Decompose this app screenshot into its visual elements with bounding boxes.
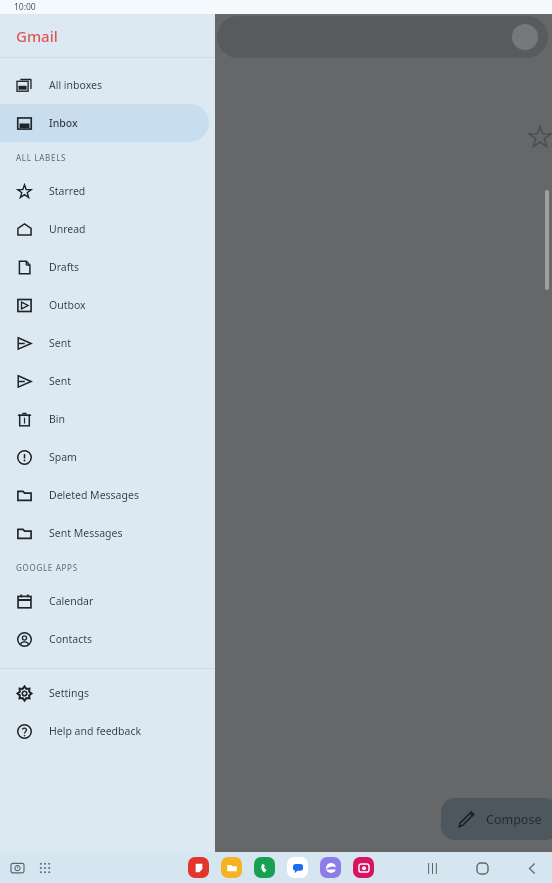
button[interactable]: Settings	[0, 674, 209, 712]
button[interactable]: Help and feedback	[0, 712, 209, 750]
staticText: Drafts	[49, 260, 80, 274]
staticText: Contacts	[49, 632, 93, 646]
button[interactable]: App	[353, 857, 374, 878]
staticText: Bin	[49, 412, 66, 426]
button[interactable]: Sent	[0, 324, 209, 362]
staticText: Sent	[49, 374, 71, 388]
button[interactable]: App	[320, 857, 341, 878]
staticText: Gmail	[16, 26, 58, 46]
button[interactable]: Account	[217, 16, 548, 58]
button[interactable]: All inboxes	[0, 66, 209, 104]
button[interactable]: Compose	[441, 798, 552, 840]
button[interactable]: Drafts	[0, 248, 209, 286]
staticText: Calendar	[49, 594, 94, 608]
button[interactable]: Inbox	[0, 104, 209, 142]
staticText: Inbox	[49, 116, 78, 130]
button[interactable]: App	[287, 857, 308, 878]
staticText: Settings	[49, 686, 89, 700]
staticText: All inboxes	[49, 78, 102, 92]
staticText: GOOGLE APPS	[16, 562, 78, 573]
staticText: Sent	[49, 336, 71, 350]
button[interactable]: Unread	[0, 210, 209, 248]
button[interactable]: Spam	[0, 438, 209, 476]
button[interactable]: Outbox	[0, 286, 209, 324]
staticText: 10:00	[14, 1, 36, 13]
button[interactable]: Deleted Messages	[0, 476, 209, 514]
button[interactable]: Recents	[420, 856, 444, 880]
button[interactable]: Contacts	[0, 620, 209, 658]
staticText: Help and feedback	[49, 724, 142, 738]
button[interactable]: Back	[520, 856, 544, 880]
staticText: ALL LABELS	[16, 152, 67, 163]
button[interactable]: Bin	[0, 400, 209, 438]
button[interactable]: Starred	[0, 172, 209, 210]
button[interactable]: Sent	[0, 362, 209, 400]
button[interactable]: All apps	[34, 857, 56, 879]
button[interactable]: Home	[470, 856, 494, 880]
button[interactable]: Sent Messages	[0, 514, 209, 552]
staticText: Unread	[49, 222, 86, 236]
staticText: Compose	[486, 811, 542, 828]
button[interactable]: Recent apps	[6, 857, 28, 879]
button[interactable]: App	[188, 857, 209, 878]
button[interactable]: Star	[528, 125, 552, 149]
staticText: Starred	[49, 184, 86, 198]
staticText: Deleted Messages	[49, 488, 139, 502]
button[interactable]: App	[254, 857, 275, 878]
button[interactable]: Account	[512, 24, 538, 50]
button[interactable]: App	[221, 857, 242, 878]
button[interactable]: Calendar	[0, 582, 209, 620]
staticText: Sent Messages	[49, 526, 123, 540]
staticText: Spam	[49, 450, 77, 464]
staticText: Outbox	[49, 298, 86, 312]
